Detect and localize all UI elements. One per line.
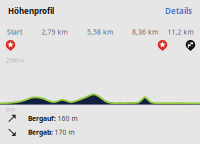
button[interactable]: Details [165, 6, 192, 16]
staticText: 2,79 km [41, 28, 67, 36]
staticText: 0 m [6, 106, 15, 113]
staticText: 5,58 km [87, 28, 113, 36]
staticText: Start [7, 28, 22, 36]
staticText: 160 m [58, 114, 78, 123]
staticText: 2500 m [6, 57, 24, 64]
staticText: 170 m [55, 128, 75, 137]
staticText: 8,36 km [132, 28, 158, 36]
staticText: 11,2 km [167, 28, 193, 36]
staticText: Details [165, 6, 192, 16]
staticText: Höhenprofil [8, 6, 54, 16]
staticText: Bergauf: [28, 114, 56, 123]
staticText: Bergab: [28, 128, 53, 137]
